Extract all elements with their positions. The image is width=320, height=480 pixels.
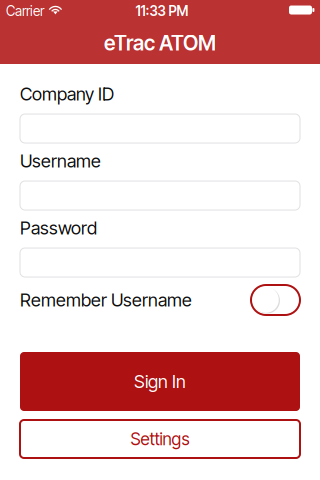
- staticText: Settings: [130, 429, 189, 449]
- staticText: Remember Username: [20, 289, 192, 311]
- button[interactable]: Sign In: [20, 352, 300, 411]
- staticText: eTrac ATOM: [104, 30, 216, 55]
- button[interactable]: Company ID: [20, 114, 300, 143]
- staticText: Sign In: [134, 371, 186, 392]
- button[interactable]: Settings: [20, 420, 300, 458]
- staticText: Username: [20, 150, 101, 172]
- button[interactable]: Password: [20, 248, 300, 277]
- staticText: Password: [20, 217, 97, 239]
- staticText: 11:33 PM: [135, 3, 188, 19]
- staticText: Company ID: [20, 83, 114, 105]
- button[interactable]: Username: [20, 181, 300, 210]
- staticText: Carrier: [6, 3, 44, 19]
- button[interactable]: Remember Username: [251, 285, 300, 315]
